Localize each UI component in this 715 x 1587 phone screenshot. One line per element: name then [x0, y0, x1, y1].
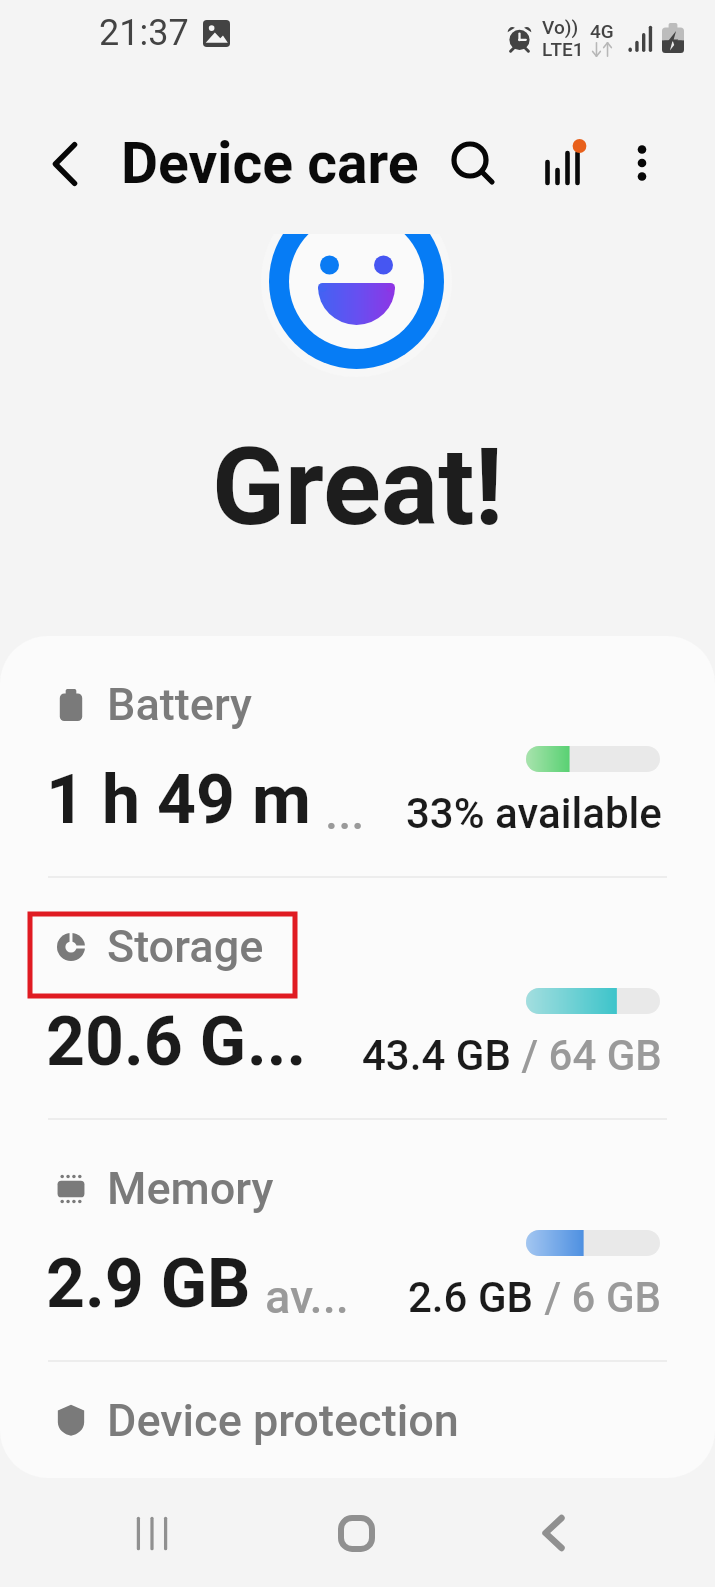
button[interactable]: Battery [0, 636, 715, 876]
button[interactable]: Recent apps [104, 1485, 200, 1581]
staticText: Memory [107, 1162, 274, 1215]
button[interactable]: Memory [0, 1120, 715, 1360]
staticText: ... [247, 1002, 307, 1082]
button[interactable]: Storage [0, 878, 715, 1118]
staticText: av... [265, 1269, 349, 1324]
staticText: Storage [107, 920, 264, 973]
staticText: / 6 GB [534, 1273, 662, 1322]
staticText: Battery [107, 678, 253, 731]
button[interactable]: More options [610, 131, 674, 195]
button[interactable]: Search [443, 133, 507, 197]
staticText: 2.6 GB [408, 1273, 534, 1322]
staticText: Device care [121, 130, 419, 197]
staticText: 20.6 G [46, 1002, 247, 1082]
button[interactable]: Device protection [0, 1362, 715, 1478]
staticText: ... [325, 785, 365, 840]
staticText: 33% available [406, 789, 662, 838]
button[interactable]: Navigate up [33, 132, 97, 196]
staticText: Vo)) [542, 16, 579, 38]
staticText: LTE1 [542, 38, 584, 60]
button[interactable]: Back [505, 1485, 601, 1581]
button[interactable]: Performance report [533, 136, 597, 200]
staticText: 2.9 GB [46, 1244, 251, 1324]
button[interactable]: Home [308, 1485, 404, 1581]
staticText: Device protection [107, 1394, 459, 1447]
staticText: Great! [212, 425, 504, 550]
staticText: 21:37 [99, 12, 189, 54]
staticText: 43.4 GB [362, 1031, 511, 1080]
staticText: 4G [590, 20, 614, 42]
staticText: / 64 GB [511, 1031, 662, 1080]
staticText: 1 h 49 m [46, 760, 311, 840]
